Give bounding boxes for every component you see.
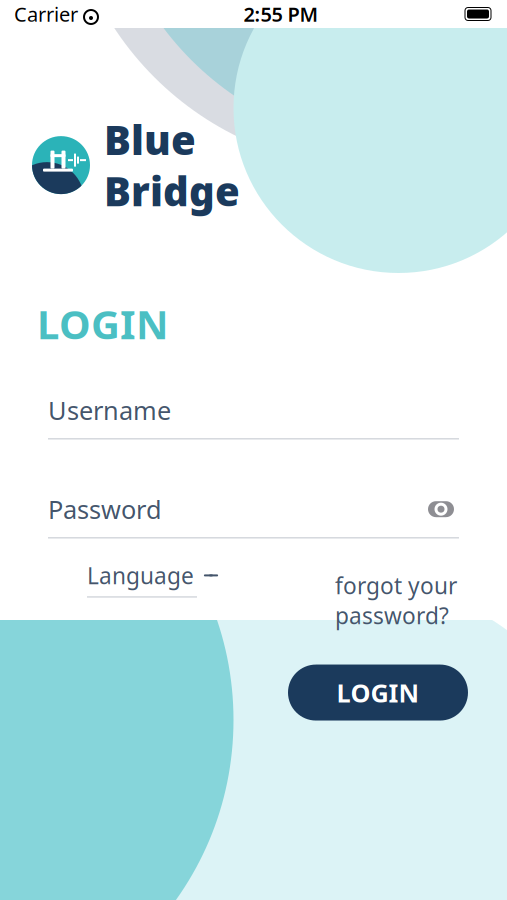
staticText: Carrier: [14, 1, 78, 27]
staticText: Password: [48, 492, 162, 526]
staticText: forgot your password?: [335, 570, 457, 631]
staticText: Language: [87, 560, 194, 590]
staticText: 2:55 PM: [243, 1, 318, 27]
staticText: Username: [48, 393, 171, 427]
staticText: Blue: [104, 113, 196, 166]
button[interactable]: Show password: [423, 494, 459, 524]
button[interactable]: Language: [87, 560, 218, 597]
button[interactable]: forgot your password?: [335, 560, 457, 631]
staticText: LOGIN: [336, 676, 419, 709]
button[interactable]: LOGIN: [288, 665, 468, 721]
staticText: Bridge: [104, 164, 240, 217]
staticText: LOGIN: [37, 297, 169, 350]
